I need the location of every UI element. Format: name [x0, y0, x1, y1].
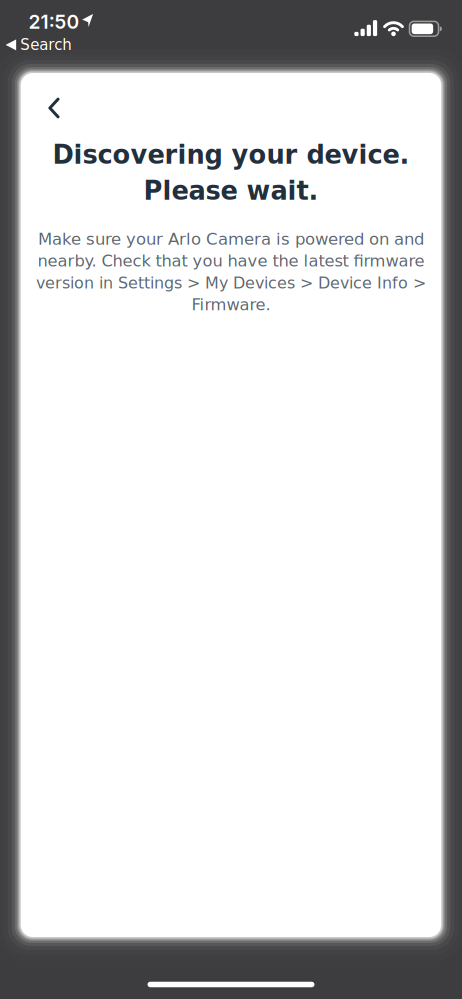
- staticText: nearby. Check that you have the latest f…: [37, 252, 424, 270]
- staticText: version in Settings > My Devices > Devic…: [36, 274, 426, 292]
- staticText: Please wait.: [143, 176, 318, 205]
- staticText: 21:50: [28, 10, 79, 33]
- staticText: Discovering your device.: [52, 140, 409, 169]
- staticText: Make sure your Arlo Camera is powered on…: [38, 230, 424, 248]
- button[interactable]: Back to Search: [6, 36, 72, 53]
- button[interactable]: Back: [39, 91, 68, 125]
- staticText: Search: [20, 36, 72, 53]
- staticText: Firmware.: [191, 295, 270, 314]
